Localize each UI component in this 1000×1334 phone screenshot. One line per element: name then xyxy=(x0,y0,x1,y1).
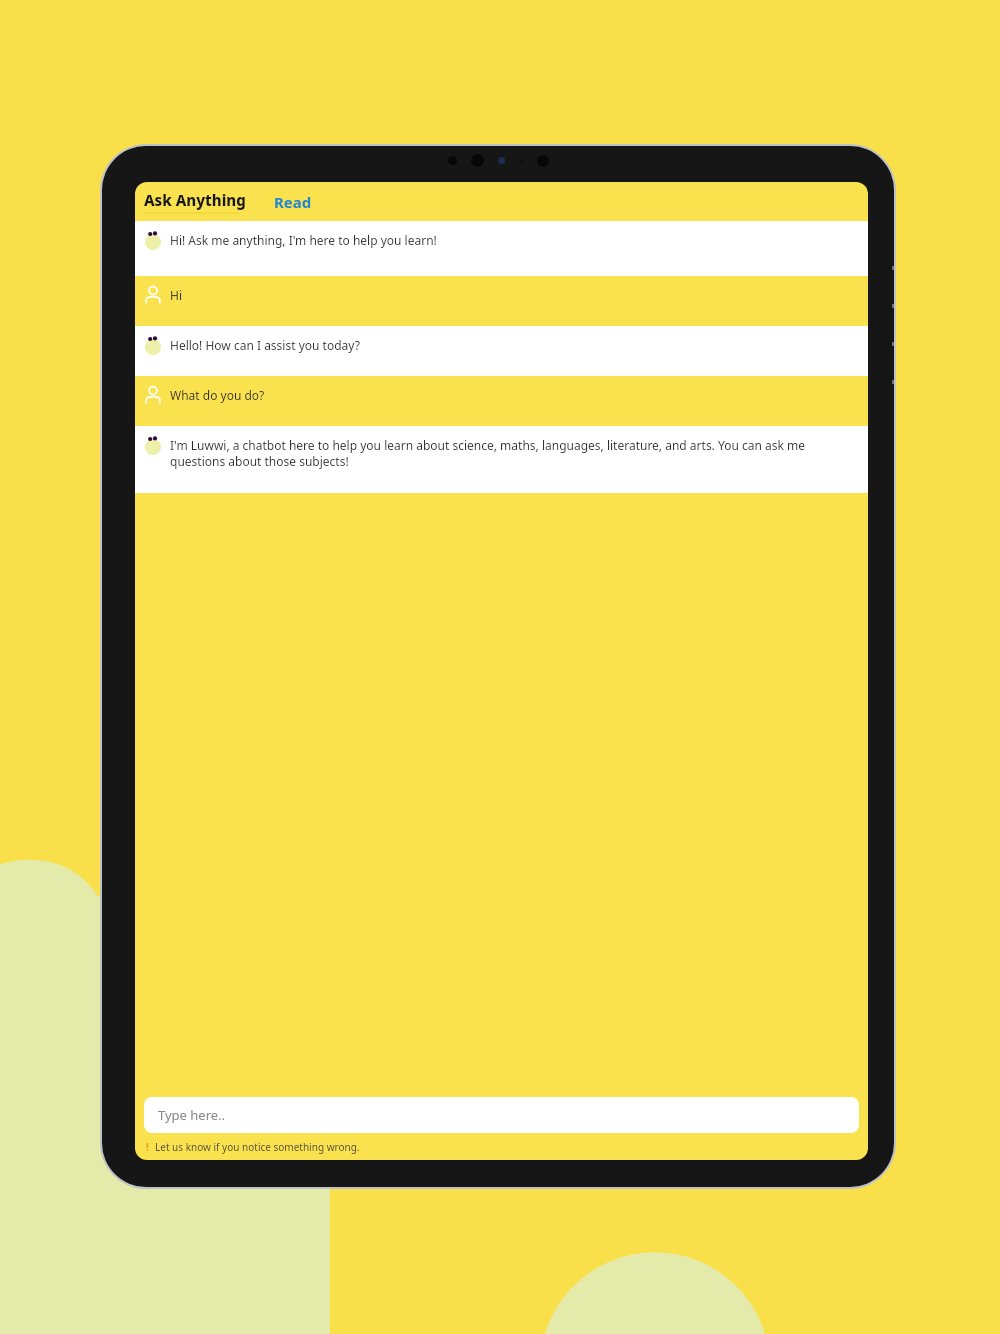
other: Luwwi bot avatar xyxy=(143,230,163,250)
other: User avatar xyxy=(143,285,163,305)
staticText: I'm Luwwi, a chatbot here to help you le… xyxy=(170,437,860,470)
button[interactable]: ! xyxy=(135,1133,868,1160)
staticText: Let us know if you notice something wron… xyxy=(155,1140,360,1154)
staticText: Type here.. xyxy=(158,1106,226,1124)
staticText: Read xyxy=(274,192,312,212)
button[interactable]: Luwwi bot avatar xyxy=(135,221,868,276)
button[interactable]: Read xyxy=(274,192,312,212)
other: User avatar xyxy=(143,385,163,405)
button[interactable]: User avatar xyxy=(135,376,868,426)
staticText: Hello! How can I assist you today? xyxy=(170,337,360,353)
other: Luwwi bot avatar xyxy=(143,335,163,355)
button[interactable]: Luwwi bot avatar xyxy=(135,426,868,493)
staticText: ! xyxy=(146,1140,149,1154)
button[interactable]: User avatar xyxy=(135,276,868,326)
button[interactable]: Luwwi bot avatar xyxy=(135,326,868,376)
button[interactable]: Type here.. xyxy=(144,1097,859,1133)
staticText: Hi xyxy=(170,287,182,303)
staticText: Hi! Ask me anything, I'm here to help yo… xyxy=(170,232,437,248)
staticText: Ask Anything xyxy=(144,190,246,210)
staticText: What do you do? xyxy=(170,387,265,403)
button[interactable]: Ask Anything xyxy=(144,190,246,214)
other: Luwwi bot avatar xyxy=(143,435,163,455)
